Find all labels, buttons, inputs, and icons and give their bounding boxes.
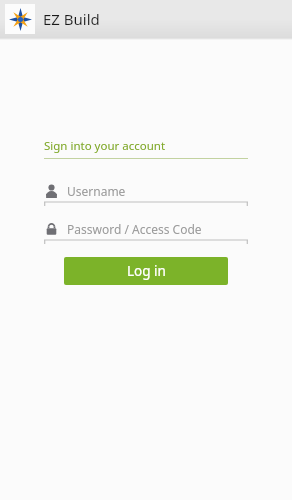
button[interactable]: Username (44, 180, 248, 206)
button[interactable]: Password (44, 218, 248, 244)
other: Password (44, 221, 59, 236)
staticText: Username (67, 183, 126, 199)
staticText: Password / Access Code (67, 221, 202, 237)
staticText: Log in (127, 262, 166, 280)
button[interactable]: Log in (64, 257, 228, 285)
staticText: Sign into your account (44, 138, 166, 154)
other: Username (44, 183, 59, 198)
staticText: EZ Build (43, 9, 100, 29)
